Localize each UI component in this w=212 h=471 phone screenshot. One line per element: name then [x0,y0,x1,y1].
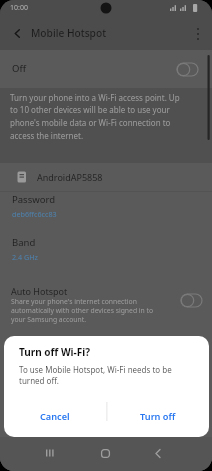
staticText: Turn off Wi-Fi? [19,345,91,359]
staticText: Turn off [140,410,176,423]
staticText: To use Mobile Hotspot, Wi-Fi needs to be… [19,364,172,386]
staticText: Mobile Hotspot [31,26,107,40]
button[interactable]: Auto Hotspot [0,281,212,336]
button[interactable]: Password [12,193,212,233]
button[interactable]: Off [0,50,212,88]
button[interactable] [148,443,168,463]
button[interactable] [40,443,60,463]
button[interactable] [176,62,199,77]
staticText: Band [12,236,36,249]
staticText: 2.4 GHz [12,252,38,262]
button[interactable] [189,25,206,42]
staticText: Password [12,193,55,206]
button[interactable] [6,22,28,44]
button[interactable] [95,443,115,463]
staticText: Share your phone's internet connection a… [11,297,154,324]
staticText: deb6ffc6cc83 [12,209,57,219]
button[interactable] [180,293,203,308]
button[interactable]: AndroidAP5858 [0,163,212,193]
button[interactable]: Band [12,236,212,276]
staticText: Auto Hotspot [11,285,68,297]
staticText: Cancel [40,410,70,423]
button[interactable]: Cancel [4,396,106,437]
staticText: Off [12,62,26,75]
staticText: 10:00 [10,3,28,13]
staticText: Turn your phone into a Wi-Fi access poin… [10,92,180,142]
button[interactable]: Turn off [107,396,209,437]
staticText: AndroidAP5858 [37,171,103,183]
